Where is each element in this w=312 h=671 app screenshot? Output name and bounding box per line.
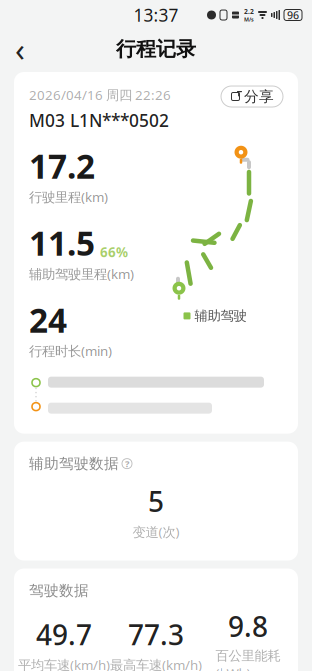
staticText: 辅助驾驶数据 — [29, 455, 119, 473]
staticText: 9.8 — [228, 608, 268, 645]
staticText: 辅助驾驶里程(km) — [29, 265, 134, 283]
staticText: 24 — [29, 298, 67, 342]
staticText: M/s — [244, 16, 254, 23]
staticText: 百公里能耗(kWh) — [215, 648, 280, 671]
staticText: 96 — [287, 8, 299, 22]
staticText: 驾驶数据 — [29, 581, 89, 599]
staticText: 平均车速(km/h) — [18, 656, 110, 671]
staticText: ‹ — [15, 28, 25, 70]
button[interactable]: Back — [0, 32, 40, 66]
staticText: 行驶里程(km) — [29, 188, 108, 206]
button[interactable]: About assisted driving data — [122, 459, 132, 469]
staticText: 行程记录 — [116, 37, 196, 61]
staticText: 13:37 — [133, 3, 178, 26]
staticText: M03 L1N***0502 — [29, 109, 169, 132]
staticText: 17.2 — [29, 144, 95, 188]
staticText: ? — [125, 457, 129, 470]
staticText: 66% — [100, 243, 128, 261]
staticText: 49.7 — [36, 616, 92, 653]
staticText: 辅助驾驶 — [194, 308, 246, 324]
staticText: 11.5 — [29, 221, 95, 265]
staticText: 行程时长(min) — [29, 342, 112, 360]
staticText: 2.2 — [244, 7, 254, 16]
staticText: 5 — [148, 483, 164, 520]
button[interactable]: 分享 — [221, 86, 283, 107]
staticText: 最高车速(km/h) — [110, 656, 202, 671]
staticText: 77.3 — [128, 616, 184, 653]
staticText: 2026/04/16 周四 22:26 — [29, 86, 171, 104]
staticText: 变道(次) — [132, 523, 179, 540]
staticText: 分享 — [244, 87, 274, 105]
